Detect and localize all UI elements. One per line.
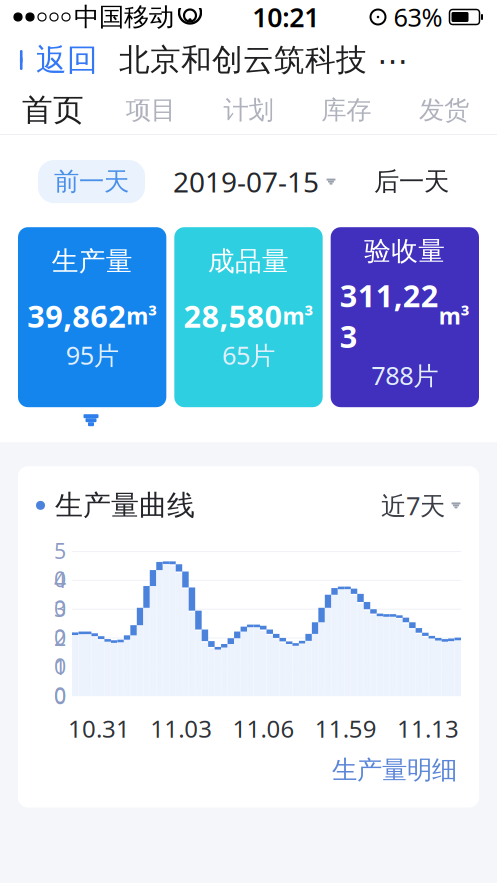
staticText: 生产量: [52, 245, 133, 278]
staticText: 30: [54, 595, 66, 651]
staticText: 11.13: [397, 713, 459, 744]
staticText: 库存: [321, 94, 371, 125]
staticText: 北京和创云筑科技 ⋯: [119, 41, 408, 79]
staticText: 发货: [419, 94, 469, 125]
staticText: m³: [439, 301, 470, 331]
button[interactable]: 计划: [200, 86, 297, 134]
staticText: 中国移动: [74, 1, 174, 32]
staticText: 后一天: [374, 166, 449, 197]
button[interactable]: 生产量明细: [332, 748, 457, 791]
staticText: 39,862: [27, 295, 126, 336]
staticText: m³: [282, 301, 313, 331]
staticText: 40: [54, 566, 66, 622]
staticText: 95片: [66, 338, 119, 372]
staticText: 11.06: [232, 713, 294, 744]
staticText: 项目: [126, 94, 176, 125]
staticText: 验收量: [364, 235, 445, 267]
staticText: 788片: [371, 358, 438, 392]
staticText: 63%: [393, 0, 442, 34]
staticText: 返回: [36, 41, 98, 79]
staticText: 10.31: [68, 713, 130, 744]
button[interactable]: 2019-07-15: [173, 157, 336, 206]
staticText: 成品量: [208, 245, 289, 278]
button[interactable]: 验收量: [331, 227, 479, 407]
button[interactable]: 发货: [395, 86, 493, 134]
staticText: 计划: [223, 94, 273, 125]
staticText: 50: [54, 537, 66, 593]
staticText: 11.59: [315, 713, 377, 744]
staticText: 10: [54, 653, 66, 709]
button[interactable]: 前一天: [38, 160, 145, 203]
staticText: 生产量曲线: [55, 488, 195, 523]
staticText: 20: [54, 624, 66, 680]
staticText: 首页: [22, 91, 84, 129]
staticText: 0: [54, 682, 66, 710]
staticText: m³: [126, 301, 157, 331]
button[interactable]: 近7天: [381, 489, 461, 522]
button[interactable]: 项目: [102, 86, 200, 134]
button[interactable]: 生产量: [18, 227, 166, 407]
button[interactable]: 首页: [4, 86, 102, 134]
button[interactable]: 库存: [297, 86, 395, 134]
staticText: 前一天: [54, 166, 129, 197]
staticText: 11.03: [150, 713, 212, 744]
staticText: 10:21: [252, 0, 319, 35]
button[interactable]: 返回: [0, 33, 98, 87]
button[interactable]: 后一天: [364, 160, 459, 203]
staticText: 近7天: [381, 489, 445, 522]
staticText: 65片: [222, 338, 275, 372]
staticText: 28,580: [183, 295, 282, 336]
staticText: 311,223: [340, 275, 439, 356]
staticText: 生产量明细: [332, 754, 457, 785]
staticText: 2019-07-15: [173, 163, 319, 200]
button[interactable]: 成品量: [174, 227, 323, 407]
